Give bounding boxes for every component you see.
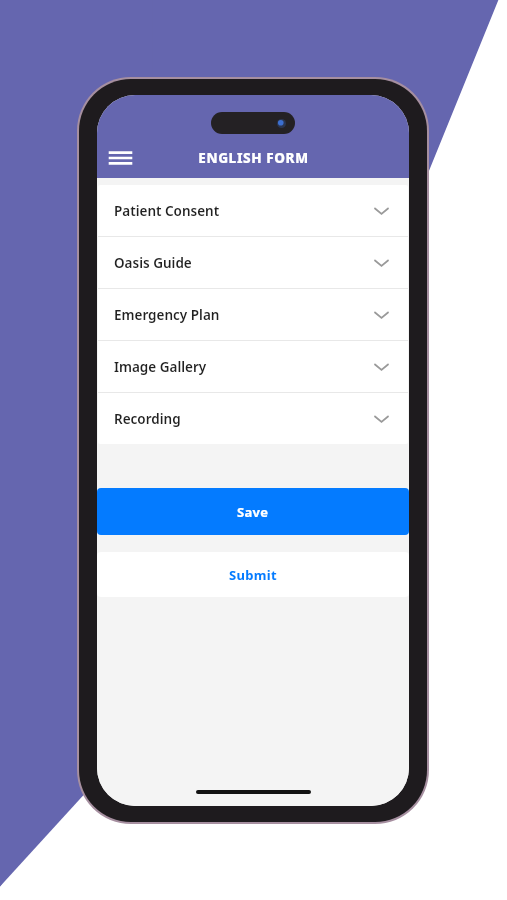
staticText: Emergency Plan	[114, 306, 375, 324]
staticText: Patient Consent	[114, 202, 375, 220]
staticText: Oasis Guide	[114, 254, 375, 272]
button[interactable]: Recording	[98, 393, 408, 444]
staticText: Save	[237, 503, 269, 521]
staticText: ENGLISH FORM	[198, 149, 309, 167]
staticText: Submit	[229, 566, 277, 584]
button[interactable]: Oasis Guide	[98, 237, 408, 288]
button[interactable]: Save	[97, 488, 409, 535]
staticText: Recording	[114, 410, 375, 428]
button[interactable]: Image Gallery	[98, 341, 408, 392]
button[interactable]: Emergency Plan	[98, 289, 408, 340]
button[interactable]: Open navigation menu	[100, 138, 140, 178]
button[interactable]: Submit	[97, 552, 409, 597]
staticText: Image Gallery	[114, 358, 375, 376]
button[interactable]: Patient Consent	[98, 185, 408, 236]
